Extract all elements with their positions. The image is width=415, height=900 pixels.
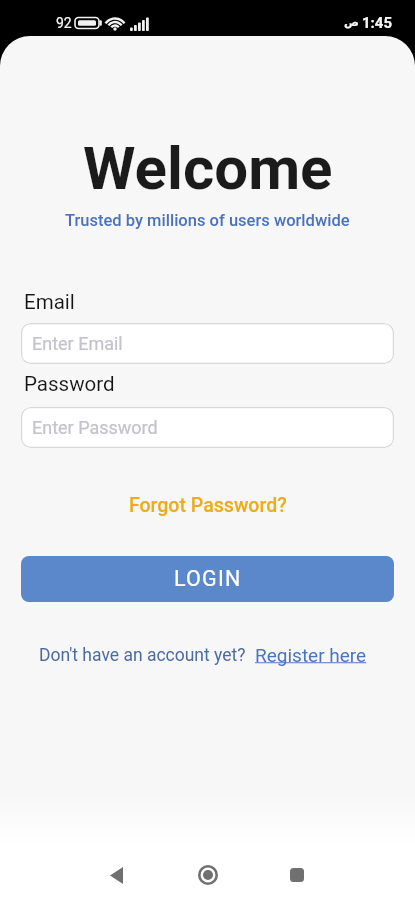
staticText: 1:45	[362, 14, 393, 32]
button[interactable]: Forgot Password?	[123, 488, 293, 523]
staticText: Forgot Password?	[129, 494, 287, 517]
staticText: Welcome	[83, 133, 333, 203]
staticText: 92	[56, 15, 72, 31]
button[interactable]	[277, 855, 317, 895]
button[interactable]	[96, 855, 136, 895]
staticText: Don't have an account yet?	[39, 645, 246, 666]
staticText: Trusted by millions of users worldwide	[65, 211, 350, 230]
button[interactable]: Enter Email	[21, 323, 394, 364]
button[interactable]: Register here	[255, 644, 367, 666]
button[interactable]: Enter Password	[21, 407, 394, 448]
button[interactable]	[188, 855, 228, 895]
staticText: LOGIN	[174, 566, 242, 591]
staticText: ص	[344, 16, 359, 29]
staticText: Enter Email	[32, 333, 123, 354]
button[interactable]: LOGIN	[21, 556, 394, 602]
staticText: Email	[24, 290, 75, 314]
staticText: Enter Password	[32, 417, 158, 438]
staticText: Register here	[255, 644, 367, 666]
staticText: Password	[24, 372, 115, 396]
